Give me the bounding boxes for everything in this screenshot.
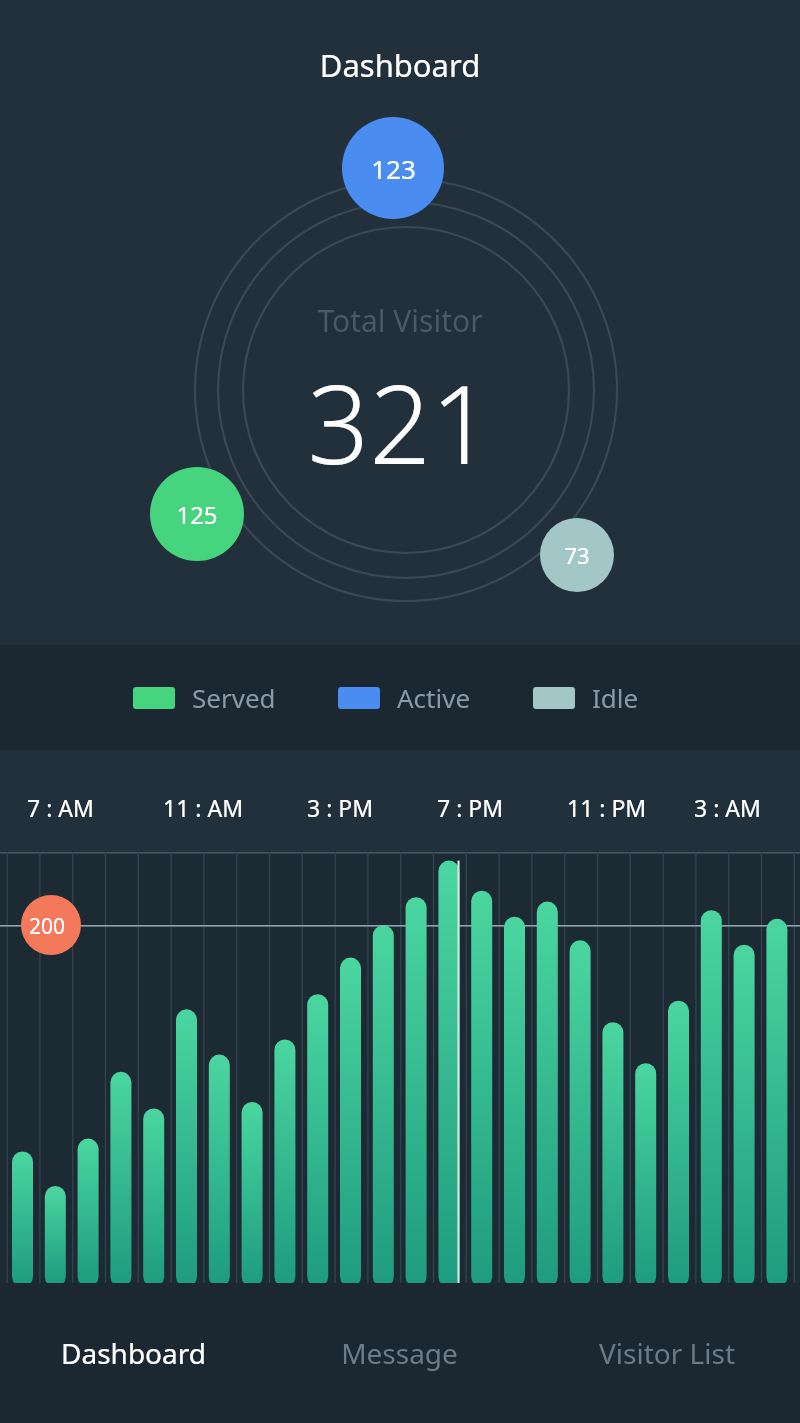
button[interactable]: Idle bbox=[533, 680, 639, 715]
staticText: 200 bbox=[29, 912, 66, 941]
staticText: 3 : AM bbox=[694, 792, 761, 823]
staticText: Visitor List bbox=[599, 1334, 735, 1372]
staticText: 7 : AM bbox=[27, 792, 94, 823]
button[interactable]: Served bbox=[133, 680, 276, 715]
button[interactable]: 123 bbox=[342, 117, 444, 219]
button[interactable]: Dashboard bbox=[0, 1334, 266, 1372]
staticText: 123 bbox=[371, 151, 416, 186]
staticText: Dashboard bbox=[61, 1334, 206, 1372]
staticText: 11 : AM bbox=[163, 792, 243, 823]
staticText: 73 bbox=[564, 540, 590, 570]
staticText: Served bbox=[192, 680, 276, 715]
button[interactable]: Active bbox=[338, 680, 471, 715]
button[interactable]: 73 bbox=[540, 518, 614, 592]
button[interactable]: 125 bbox=[150, 467, 244, 561]
button[interactable]: Message bbox=[266, 1334, 533, 1372]
staticText: Total Visitor bbox=[317, 300, 483, 341]
staticText: 3 : PM bbox=[307, 792, 374, 823]
staticText: 125 bbox=[176, 498, 218, 531]
staticText: 321 bbox=[307, 349, 493, 496]
staticText: 11 : PM bbox=[567, 792, 647, 823]
staticText: Active bbox=[397, 680, 471, 715]
staticText: Idle bbox=[592, 680, 639, 715]
staticText: Message bbox=[341, 1334, 458, 1372]
button[interactable]: Visitor List bbox=[533, 1334, 800, 1372]
staticText: Dashboard bbox=[0, 44, 800, 86]
staticText: 7 : PM bbox=[437, 792, 504, 823]
